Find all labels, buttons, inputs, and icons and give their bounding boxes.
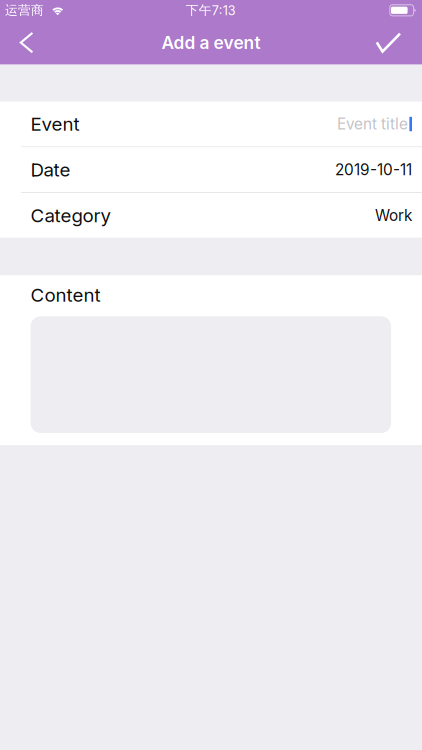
staticText: 2019-10-11: [335, 160, 412, 179]
staticText: Event title: [337, 115, 408, 133]
staticText: Add a event: [161, 32, 260, 53]
staticText: 下午7:13: [186, 2, 236, 18]
button[interactable]: Date: [0, 147, 422, 192]
button[interactable]: Category: [0, 193, 422, 238]
staticText: Event: [30, 113, 79, 135]
staticText: 运营商: [5, 2, 44, 18]
staticText: Date: [30, 158, 70, 181]
staticText: Category: [30, 204, 110, 227]
staticText: Content: [30, 284, 100, 306]
button[interactable]: Save: [332, 21, 422, 65]
button[interactable]: Back: [0, 21, 90, 65]
button[interactable]: Event: [0, 102, 422, 146]
staticText: Work: [375, 206, 412, 225]
